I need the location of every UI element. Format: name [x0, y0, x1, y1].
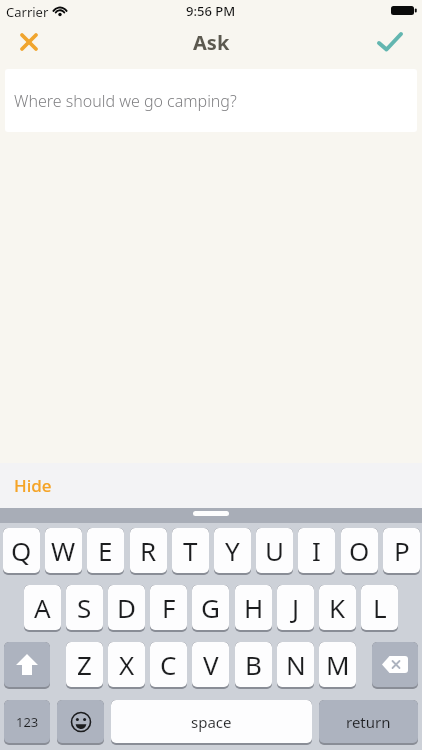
- button[interactable]: W: [45, 528, 82, 575]
- button[interactable]: F: [150, 585, 187, 632]
- staticText: Y: [225, 533, 240, 568]
- button[interactable]: A: [24, 585, 61, 632]
- button[interactable]: M: [319, 642, 356, 689]
- button[interactable]: [12, 27, 46, 57]
- button[interactable]: [57, 700, 104, 745]
- staticText: C: [160, 647, 177, 682]
- staticText: space: [191, 712, 232, 732]
- button[interactable]: I: [298, 528, 335, 575]
- staticText: P: [394, 533, 410, 568]
- button[interactable]: U: [256, 528, 293, 575]
- staticText: L: [373, 590, 387, 625]
- button[interactable]: Z: [66, 642, 103, 689]
- button[interactable]: Q: [3, 528, 40, 575]
- button[interactable]: D: [108, 585, 145, 632]
- staticText: N: [286, 647, 306, 682]
- button[interactable]: 123: [4, 700, 50, 745]
- button[interactable]: V: [192, 642, 229, 689]
- button[interactable]: return: [319, 700, 418, 745]
- staticText: B: [245, 647, 262, 682]
- button[interactable]: P: [383, 528, 420, 575]
- staticText: Z: [77, 647, 92, 682]
- staticText: Q: [11, 533, 32, 568]
- button[interactable]: X: [108, 642, 145, 689]
- button[interactable]: O: [341, 528, 378, 575]
- staticText: 9:56 PM: [186, 2, 236, 20]
- button[interactable]: J: [277, 585, 314, 632]
- button[interactable]: space: [111, 700, 312, 745]
- staticText: return: [346, 712, 391, 732]
- button[interactable]: [372, 27, 408, 57]
- button[interactable]: S: [66, 585, 103, 632]
- staticText: X: [119, 647, 135, 682]
- staticText: V: [203, 647, 219, 682]
- staticText: T: [183, 533, 198, 568]
- button[interactable]: C: [150, 642, 187, 689]
- button[interactable]: B: [235, 642, 272, 689]
- staticText: I: [312, 533, 321, 568]
- button[interactable]: Y: [214, 528, 251, 575]
- button[interactable]: G: [192, 585, 229, 632]
- button[interactable]: R: [130, 528, 167, 575]
- staticText: Hide: [14, 474, 52, 497]
- button[interactable]: K: [319, 585, 356, 632]
- staticText: Where should we go camping?: [14, 90, 237, 112]
- button[interactable]: [4, 642, 50, 689]
- staticText: Carrier: [6, 3, 49, 21]
- staticText: G: [201, 590, 220, 625]
- button[interactable]: L: [361, 585, 398, 632]
- button[interactable]: Hide: [0, 463, 422, 508]
- staticText: E: [98, 533, 113, 568]
- button[interactable]: T: [172, 528, 209, 575]
- button[interactable]: Where should we go camping?: [5, 69, 417, 132]
- button[interactable]: [372, 642, 418, 689]
- button[interactable]: E: [87, 528, 124, 575]
- button[interactable]: N: [277, 642, 314, 689]
- staticText: A: [34, 590, 51, 625]
- staticText: K: [329, 590, 346, 625]
- staticText: F: [162, 590, 176, 625]
- staticText: S: [77, 590, 92, 625]
- staticText: M: [326, 647, 350, 682]
- button[interactable]: H: [235, 585, 272, 632]
- staticText: O: [349, 533, 370, 568]
- staticText: H: [244, 590, 264, 625]
- staticText: R: [140, 533, 157, 568]
- staticText: W: [51, 533, 76, 568]
- staticText: J: [292, 590, 300, 625]
- staticText: D: [117, 590, 136, 625]
- staticText: Ask: [193, 29, 230, 56]
- staticText: U: [265, 533, 285, 568]
- staticText: 123: [16, 713, 39, 731]
